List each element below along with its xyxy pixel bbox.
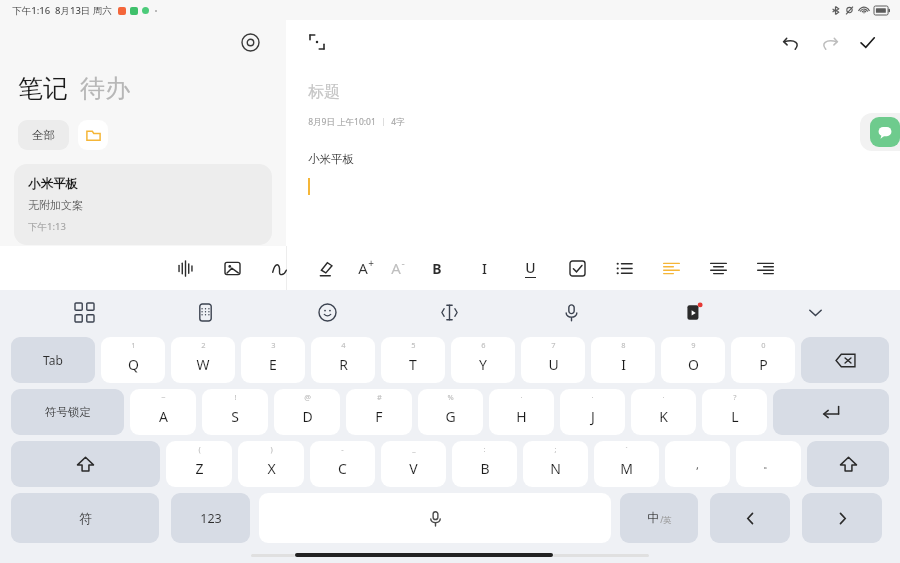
button[interactable]: 9 [661, 337, 725, 383]
button[interactable]: ` [594, 441, 659, 487]
button[interactable]: 123 [171, 493, 250, 543]
staticText: 符号锁定 [45, 405, 91, 419]
staticText: T [409, 355, 417, 374]
button[interactable]: ( [166, 441, 232, 487]
staticText: 待办 [80, 73, 130, 104]
button[interactable]: : [452, 441, 517, 487]
button[interactable]: ? [702, 389, 767, 435]
staticText: I [621, 355, 626, 374]
staticText: Q [128, 355, 139, 374]
button[interactable] [807, 441, 889, 487]
button[interactable]: 8 [591, 337, 655, 383]
staticText: A [358, 258, 368, 278]
button[interactable]: 符号锁定 [11, 389, 124, 435]
button[interactable] [710, 493, 790, 543]
button[interactable]: Apps [24, 294, 145, 330]
button[interactable]: Redo [814, 27, 844, 57]
button[interactable]: Chat [870, 117, 900, 147]
staticText: E [269, 355, 277, 374]
staticText: 1 [131, 340, 136, 350]
button[interactable]: Text select [388, 294, 510, 330]
button[interactable]: 0 [731, 337, 795, 383]
button[interactable]: Bullet list [609, 253, 639, 283]
button[interactable]: Undo [776, 27, 806, 57]
button[interactable]: Keyboard layout [145, 294, 266, 330]
button[interactable]: ~ [130, 389, 196, 435]
button[interactable]: 3 [241, 337, 305, 383]
button[interactable]: ! [202, 389, 268, 435]
staticText: I [482, 259, 487, 278]
button[interactable]: B [422, 253, 452, 283]
staticText: 7 [551, 340, 556, 350]
button[interactable] [801, 337, 889, 383]
staticText: 小米平板 [28, 176, 78, 192]
button[interactable]: 全部 [18, 120, 69, 150]
button[interactable]: ) [238, 441, 304, 487]
button[interactable]: _ [381, 441, 446, 487]
button[interactable]: # [346, 389, 412, 435]
button[interactable]: Align center [703, 253, 733, 283]
button[interactable]: Tab [11, 337, 95, 383]
button[interactable]: Clipboard [632, 294, 754, 330]
button[interactable]: 符 [11, 493, 159, 543]
staticText: R [339, 355, 348, 374]
button[interactable]: 。 [736, 441, 801, 487]
staticText: N [550, 459, 561, 478]
button[interactable]: Settings [236, 28, 264, 56]
button[interactable]: 5 [381, 337, 445, 383]
button[interactable]: Checkbox [562, 253, 592, 283]
button[interactable]: A [358, 253, 374, 283]
staticText: F [375, 407, 383, 426]
button[interactable]: Space [259, 493, 611, 543]
staticText: A [391, 258, 401, 278]
button[interactable]: 小米平板 [14, 164, 272, 245]
button[interactable]: Voice input [510, 294, 632, 330]
button[interactable]: Hide keyboard [754, 294, 876, 330]
button[interactable]: 7 [521, 337, 585, 383]
button[interactable]: I [468, 253, 498, 283]
button[interactable]: 2 [171, 337, 235, 383]
staticText: C [338, 459, 347, 478]
staticText: % [447, 392, 454, 402]
staticText: : [483, 444, 486, 454]
button[interactable]: Align right [750, 253, 780, 283]
button[interactable]: · [560, 389, 625, 435]
button[interactable] [802, 493, 882, 543]
staticText: B [432, 259, 442, 278]
button[interactable]: Align left [656, 253, 686, 283]
button[interactable]: Draw [264, 253, 294, 283]
button[interactable]: Folders [78, 120, 108, 150]
button[interactable]: 待办 [80, 73, 130, 104]
button[interactable]: - [310, 441, 375, 487]
staticText: K [659, 407, 668, 426]
button[interactable]: Image [217, 253, 247, 283]
staticText: 笔记 [18, 73, 68, 104]
button[interactable]: 笔记 [18, 73, 68, 104]
button[interactable]: Done [852, 27, 882, 57]
button[interactable]: Highlight [311, 253, 341, 283]
staticText: ~ [161, 392, 166, 402]
button[interactable]: 4 [311, 337, 375, 383]
button[interactable]: Fullscreen [304, 29, 330, 55]
button[interactable] [773, 389, 889, 435]
button[interactable]: A [391, 253, 405, 283]
button[interactable] [11, 441, 160, 487]
staticText: - [401, 256, 405, 270]
button[interactable]: % [418, 389, 483, 435]
button[interactable]: · [489, 389, 554, 435]
button[interactable]: @ [274, 389, 340, 435]
staticText: D [302, 407, 313, 426]
staticText: # [377, 392, 382, 402]
button[interactable]: U [515, 253, 545, 283]
button[interactable]: 中 [620, 493, 698, 543]
button[interactable]: ; [523, 441, 588, 487]
staticText: · [520, 392, 523, 402]
staticText: _ [412, 444, 416, 454]
button[interactable]: 6 [451, 337, 515, 383]
staticText: 下午1:16 8月13日 周六 [12, 4, 112, 17]
button[interactable]: Emoji [266, 294, 388, 330]
button[interactable]: , [665, 441, 730, 487]
button[interactable]: 1 [101, 337, 165, 383]
button[interactable]: Audio [170, 253, 200, 283]
button[interactable]: · [631, 389, 696, 435]
